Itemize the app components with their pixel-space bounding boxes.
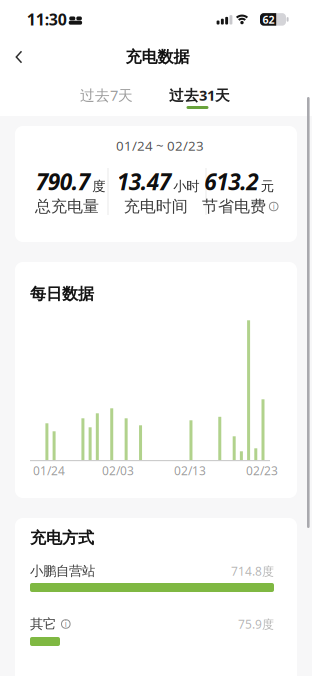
staticText: 02/23 bbox=[246, 462, 278, 478]
staticText: 充电数据 bbox=[125, 47, 189, 67]
staticText: 总充电量 bbox=[35, 197, 99, 216]
staticText: 714.8度 bbox=[231, 563, 274, 579]
staticText: 度 bbox=[92, 178, 105, 195]
staticText: 11:30 bbox=[27, 9, 67, 30]
staticText: 小鹏自营站 bbox=[30, 563, 95, 579]
staticText: 02/13 bbox=[174, 462, 206, 478]
staticText: 02/03 bbox=[102, 462, 134, 478]
staticText: 节省电费 bbox=[202, 197, 266, 216]
button[interactable]: 过去7天 bbox=[71, 83, 141, 107]
button[interactable]: i bbox=[56, 619, 71, 629]
button[interactable] bbox=[8, 46, 38, 68]
button[interactable]: 节省电费 bbox=[202, 197, 278, 216]
staticText: 01/24 ~ 02/23 bbox=[116, 137, 204, 154]
staticText: 小时 bbox=[173, 178, 199, 195]
staticText: 每日数据 bbox=[30, 284, 94, 304]
staticText: 13.47 bbox=[117, 166, 171, 196]
staticText: 613.2 bbox=[204, 166, 258, 196]
staticText: 过去7天 bbox=[80, 85, 133, 105]
staticText: 充电方式 bbox=[30, 528, 94, 548]
staticText: 790.7 bbox=[36, 166, 90, 196]
staticText: 62 bbox=[263, 12, 275, 27]
staticText: 01/24 bbox=[33, 462, 65, 478]
staticText: i bbox=[65, 619, 67, 629]
staticText: 其它 bbox=[30, 616, 56, 632]
button[interactable]: 过去31天 bbox=[161, 83, 237, 107]
staticText: 过去31天 bbox=[169, 85, 230, 105]
staticText: 元 bbox=[261, 178, 274, 195]
staticText: 充电时间 bbox=[124, 197, 188, 216]
staticText: i bbox=[273, 201, 275, 212]
staticText: 75.9度 bbox=[238, 616, 274, 632]
